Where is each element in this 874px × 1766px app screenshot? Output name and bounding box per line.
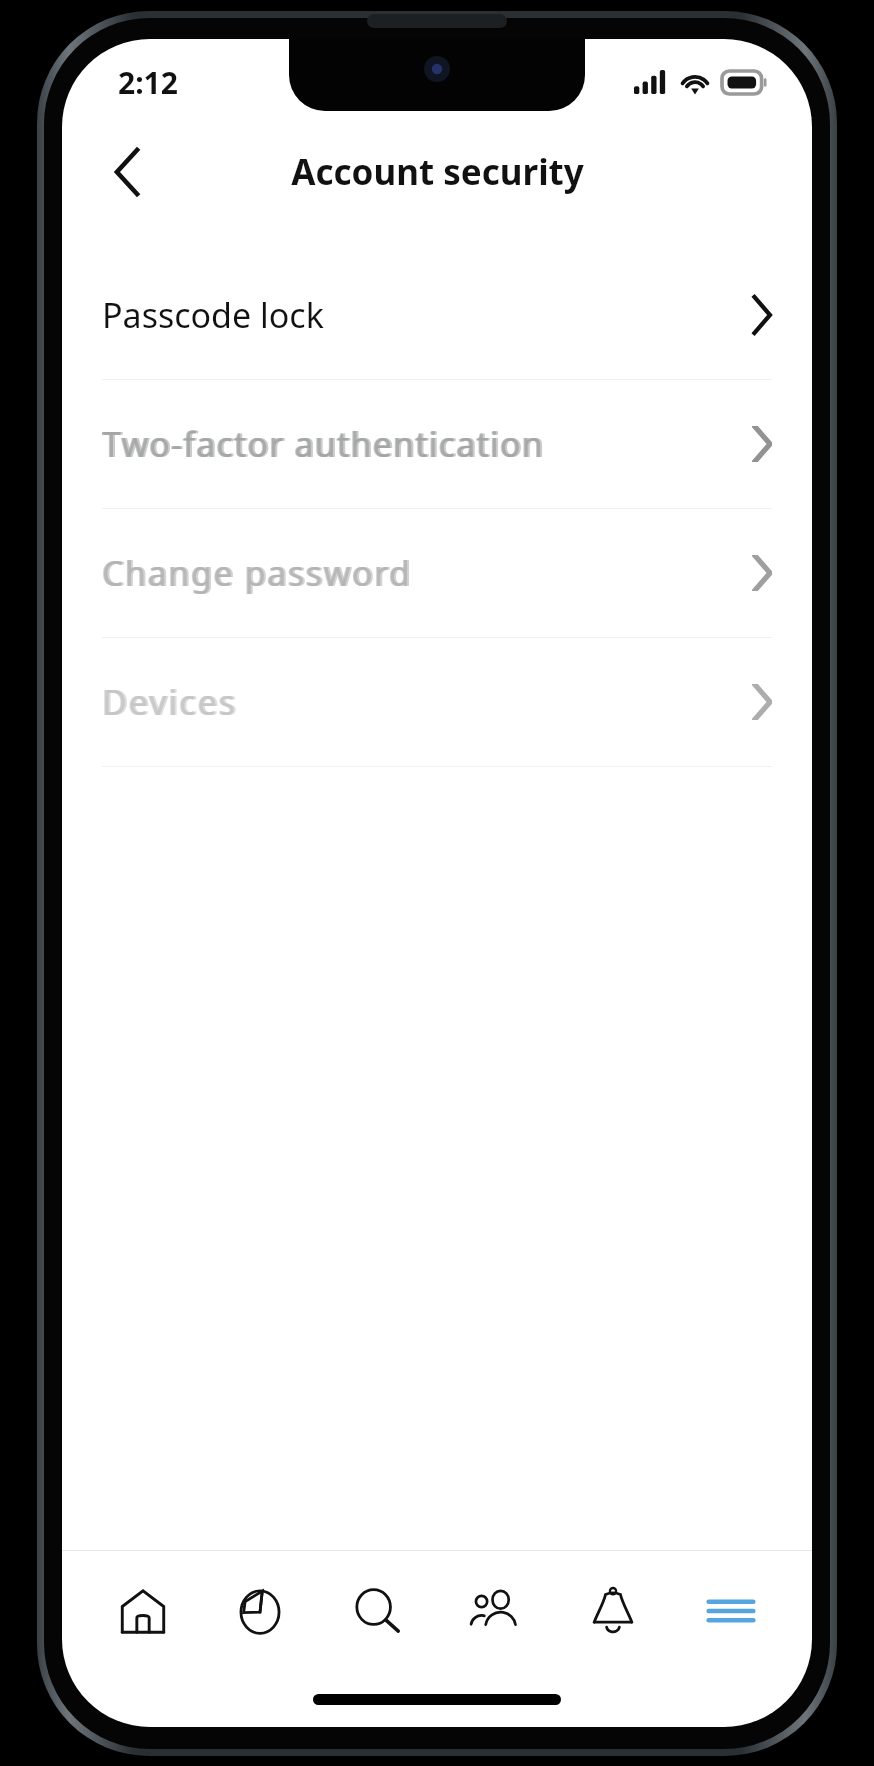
button[interactable]: Menu	[672, 1551, 790, 1671]
button[interactable]: Notifications	[554, 1551, 672, 1671]
button[interactable]: Contacts	[436, 1551, 554, 1671]
staticText: Two-factor authentication	[102, 421, 543, 467]
button[interactable]: Two-factor authentication	[62, 380, 812, 508]
staticText: Devices	[102, 679, 238, 725]
staticText: Two-factor authentication	[102, 421, 544, 467]
staticText: Change password	[102, 550, 412, 596]
button[interactable]: Search	[318, 1551, 436, 1671]
button[interactable]: Devices	[62, 638, 812, 766]
button[interactable]: Passcode lock	[62, 251, 812, 379]
button[interactable]: Back	[88, 133, 166, 211]
staticText: Change password	[102, 550, 411, 596]
staticText: Account security	[291, 148, 584, 196]
button[interactable]: Insights	[201, 1551, 318, 1671]
button[interactable]: Home	[84, 1551, 201, 1671]
button[interactable]: Change password	[62, 509, 812, 637]
staticText: Passcode lock	[102, 292, 324, 338]
staticText: 2:12	[118, 62, 178, 103]
staticText: Devices	[104, 679, 238, 725]
staticText: Two-factor authentication	[104, 421, 544, 467]
staticText: Change password	[104, 550, 412, 596]
staticText: Devices	[102, 679, 237, 725]
